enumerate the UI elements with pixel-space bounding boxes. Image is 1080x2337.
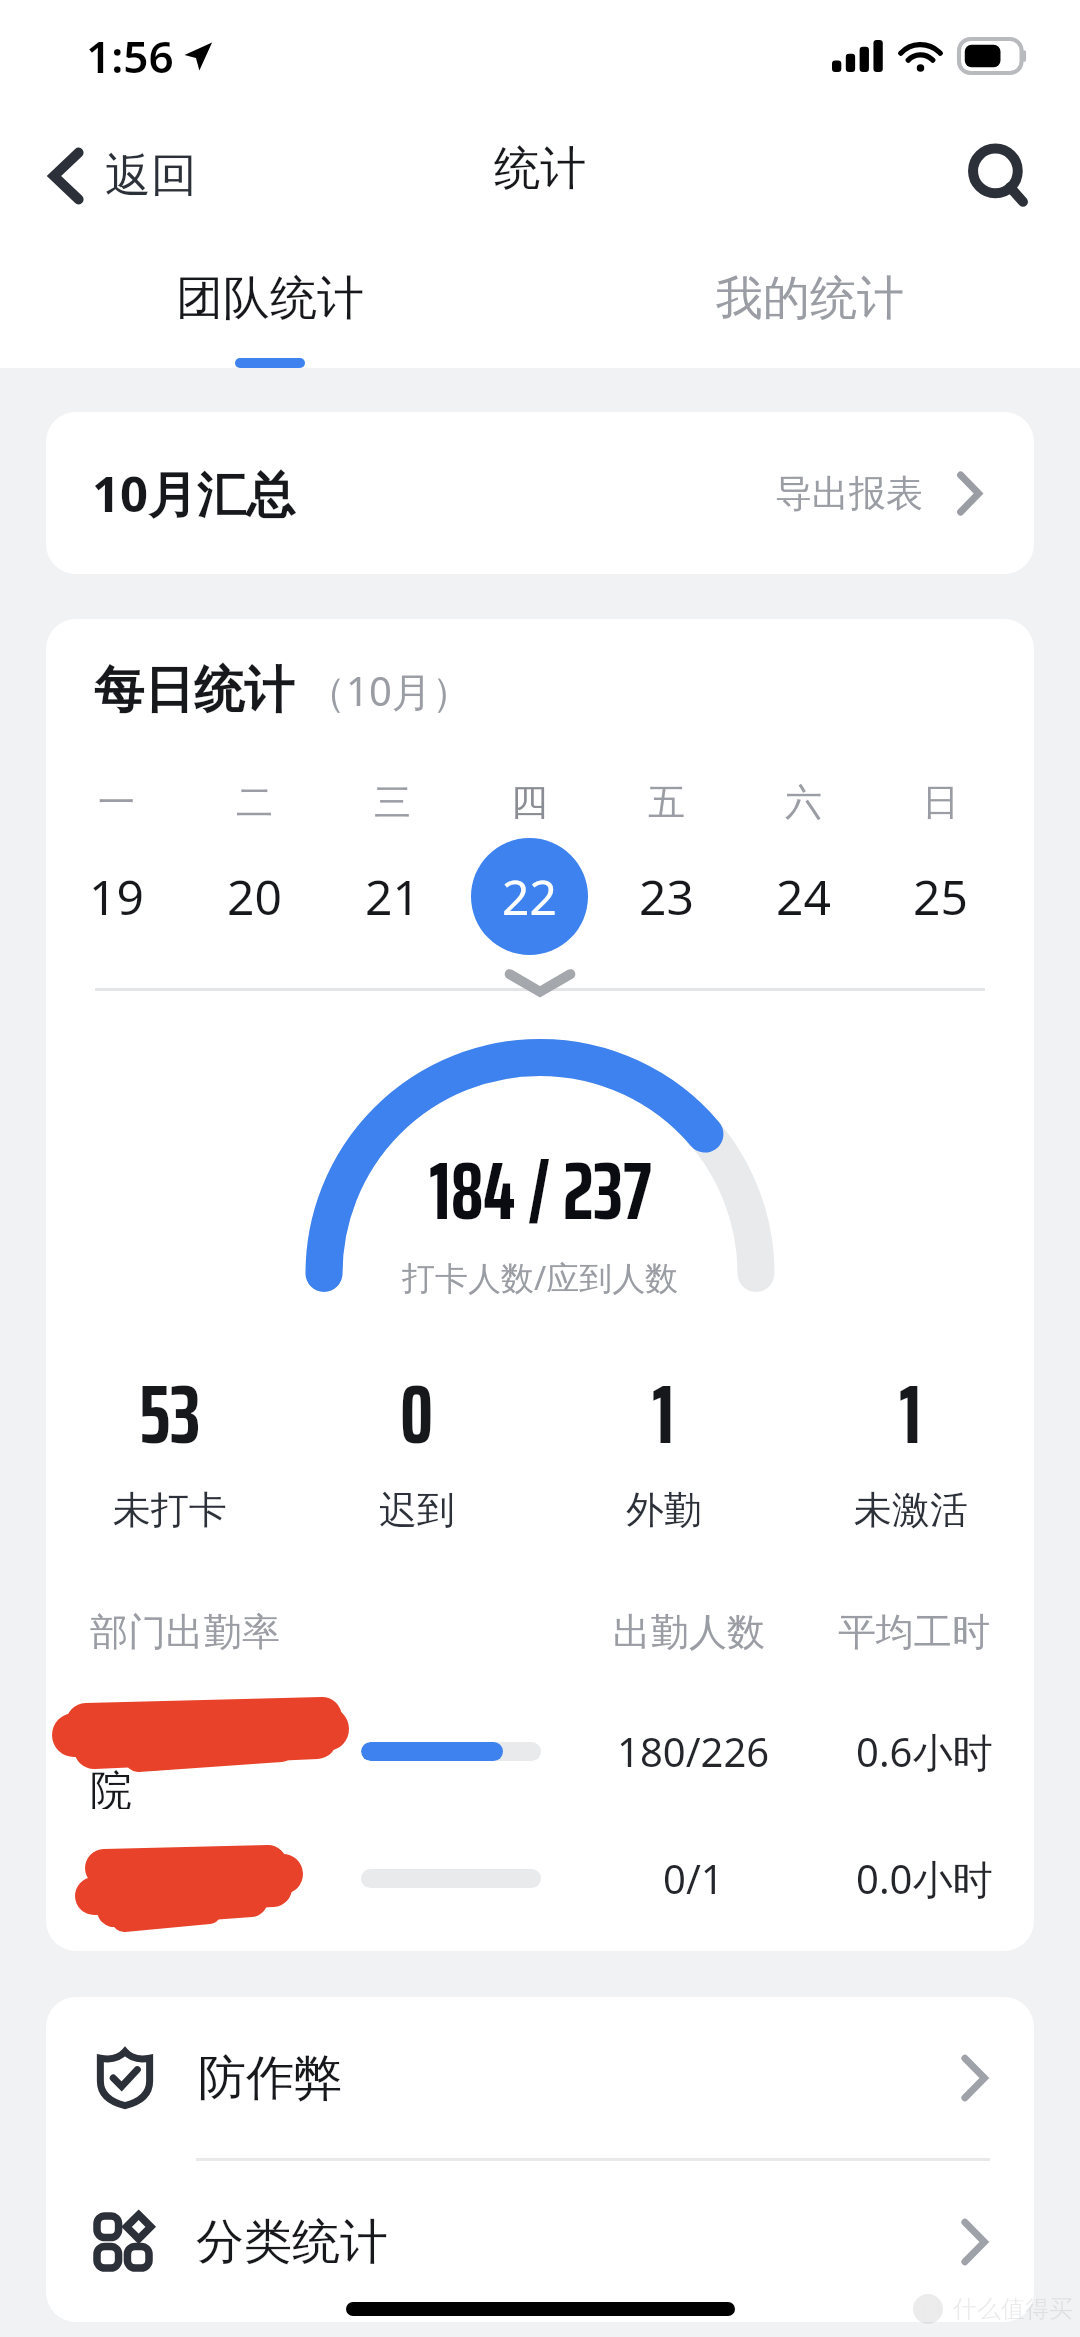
button[interactable]: 二 (185, 779, 323, 955)
staticText: 值 (917, 2295, 939, 2323)
staticText: 部门出勤率 (90, 1608, 280, 1656)
staticText: 23 (639, 864, 694, 929)
button[interactable]: 返回 (0, 131, 219, 221)
staticText: 日 (922, 779, 959, 826)
button[interactable]: 三 (323, 779, 461, 955)
button[interactable]: 四 (461, 779, 598, 955)
staticText: 53 (139, 1349, 201, 1480)
staticText: 五 (648, 779, 685, 826)
button[interactable]: 0 (293, 1349, 540, 1534)
staticText: 180/226 (617, 1724, 770, 1778)
button[interactable]: 五 (598, 779, 735, 955)
staticText: 24 (776, 864, 831, 929)
staticText: 平均工时 (838, 1608, 990, 1656)
staticText: 院 (90, 1765, 132, 1809)
staticText: 1:56 (86, 26, 174, 86)
staticText: 10月汇总 (92, 460, 296, 527)
staticText: 统计 (494, 140, 586, 198)
staticText: 25 (913, 864, 968, 929)
button[interactable]: 防作弊 (46, 1997, 1034, 2158)
staticText: 分类统计 (196, 2212, 388, 2272)
staticText: 19 (89, 864, 144, 929)
staticText: 返回 (105, 147, 197, 205)
staticText: 21 (365, 864, 420, 929)
staticText: 导出报表 (775, 470, 923, 517)
button[interactable]: Expand (492, 972, 588, 994)
staticText: 我的统计 (716, 269, 904, 328)
staticText: 迟到 (379, 1486, 455, 1534)
staticText: 未激活 (854, 1486, 968, 1534)
button[interactable]: 0/1 (46, 1820, 1034, 1936)
staticText: 二 (236, 779, 273, 826)
staticText: 六 (785, 779, 822, 826)
staticText: 防作弊 (198, 2048, 342, 2108)
staticText: 外勤 (626, 1486, 702, 1534)
button[interactable]: 六 (735, 779, 872, 955)
staticText: 每日统计 (94, 659, 294, 722)
staticText: 1 (652, 1349, 675, 1480)
staticText: 20 (227, 864, 282, 929)
staticText: 0.6小时 (856, 1724, 993, 1779)
button[interactable]: 1 (787, 1349, 1034, 1534)
staticText: 184 / 237 (429, 1127, 652, 1254)
staticText: 0 (400, 1349, 434, 1480)
button[interactable]: 院 (46, 1693, 1034, 1809)
staticText: 22 (502, 864, 557, 929)
button[interactable]: 一 (47, 779, 185, 955)
button[interactable]: 1 (540, 1349, 787, 1534)
staticText: （10月） (306, 663, 472, 718)
staticText: 一 (98, 779, 135, 826)
staticText: 出勤人数 (613, 1608, 765, 1656)
staticText: 什么值得买 (953, 2294, 1073, 2324)
button[interactable]: Search (936, 124, 1080, 228)
button[interactable]: 分类统计 (46, 2161, 1034, 2322)
button[interactable]: 团队统计 (0, 240, 540, 368)
staticText: 0/1 (663, 1851, 724, 1905)
button[interactable]: 10月汇总 (46, 412, 1034, 574)
button[interactable]: 我的统计 (540, 240, 1080, 368)
staticText: 打卡人数/应到人数 (402, 1255, 679, 1300)
staticText: 团队统计 (176, 269, 364, 328)
staticText: 四 (511, 779, 548, 826)
staticText: 三 (374, 779, 411, 826)
button[interactable]: 日 (872, 779, 1009, 955)
button[interactable]: 53 (46, 1349, 293, 1534)
staticText: 1 (899, 1349, 922, 1480)
staticText: 0.0小时 (856, 1851, 993, 1906)
staticText: 未打卡 (113, 1486, 227, 1534)
